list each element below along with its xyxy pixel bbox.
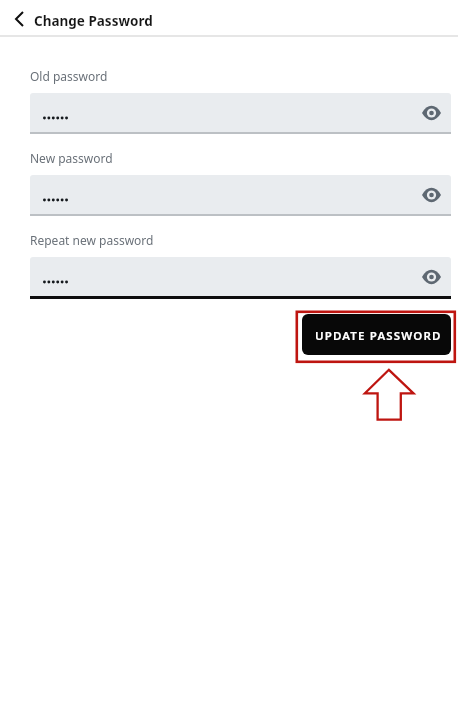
button[interactable]: Show password bbox=[416, 262, 446, 292]
button[interactable]: Back bbox=[8, 7, 31, 30]
staticText: Repeat new password bbox=[30, 232, 154, 248]
staticText: Old password bbox=[30, 68, 108, 84]
button[interactable]: Show password bbox=[30, 175, 451, 214]
staticText: New password bbox=[30, 150, 113, 166]
button[interactable]: Show password bbox=[30, 257, 451, 296]
staticText: UPDATE PASSWORD bbox=[315, 328, 442, 344]
staticText: Change Password bbox=[34, 12, 153, 30]
button[interactable]: Show password bbox=[416, 180, 446, 210]
button[interactable]: Show password bbox=[416, 98, 446, 128]
button[interactable]: Show password bbox=[30, 93, 451, 132]
button[interactable]: UPDATE PASSWORD bbox=[302, 314, 451, 355]
